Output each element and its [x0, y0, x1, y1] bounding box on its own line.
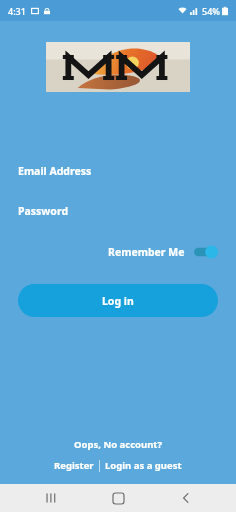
- button[interactable]: Home: [101, 484, 135, 512]
- staticText: Password: [18, 204, 69, 218]
- button[interactable]: Log in: [18, 284, 218, 317]
- staticText: Oops, No account?: [74, 438, 162, 451]
- button[interactable]: Remember Me: [104, 243, 222, 261]
- button[interactable]: Back: [169, 484, 203, 512]
- staticText: 4:31: [8, 5, 26, 17]
- button[interactable]: Password: [0, 196, 236, 226]
- button[interactable]: Register: [49, 457, 99, 474]
- staticText: Log in: [102, 294, 134, 308]
- staticText: Email Address: [18, 164, 92, 178]
- staticText: Login as a guest: [105, 459, 182, 472]
- button[interactable]: Login as a guest: [100, 457, 187, 474]
- button[interactable]: Recent apps: [34, 484, 68, 512]
- button[interactable]: Email Address: [0, 156, 236, 186]
- staticText: Remember Me: [108, 245, 185, 259]
- staticText: 54%: [202, 5, 220, 17]
- staticText: Register: [54, 459, 94, 472]
